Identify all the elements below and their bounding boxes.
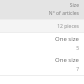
button[interactable]: 12 pieces (0, 20, 84, 32)
staticText: 5 (76, 45, 79, 52)
staticText: One size (55, 56, 79, 64)
staticText: 7 (76, 66, 79, 73)
button[interactable]: Size (0, 0, 84, 19)
button[interactable]: One size (0, 54, 84, 75)
staticText: N° of articles (48, 10, 79, 17)
staticText: One size (55, 35, 79, 43)
button[interactable]: One size (0, 33, 84, 54)
staticText: 12 pieces (57, 23, 79, 30)
staticText: Size (69, 2, 79, 9)
